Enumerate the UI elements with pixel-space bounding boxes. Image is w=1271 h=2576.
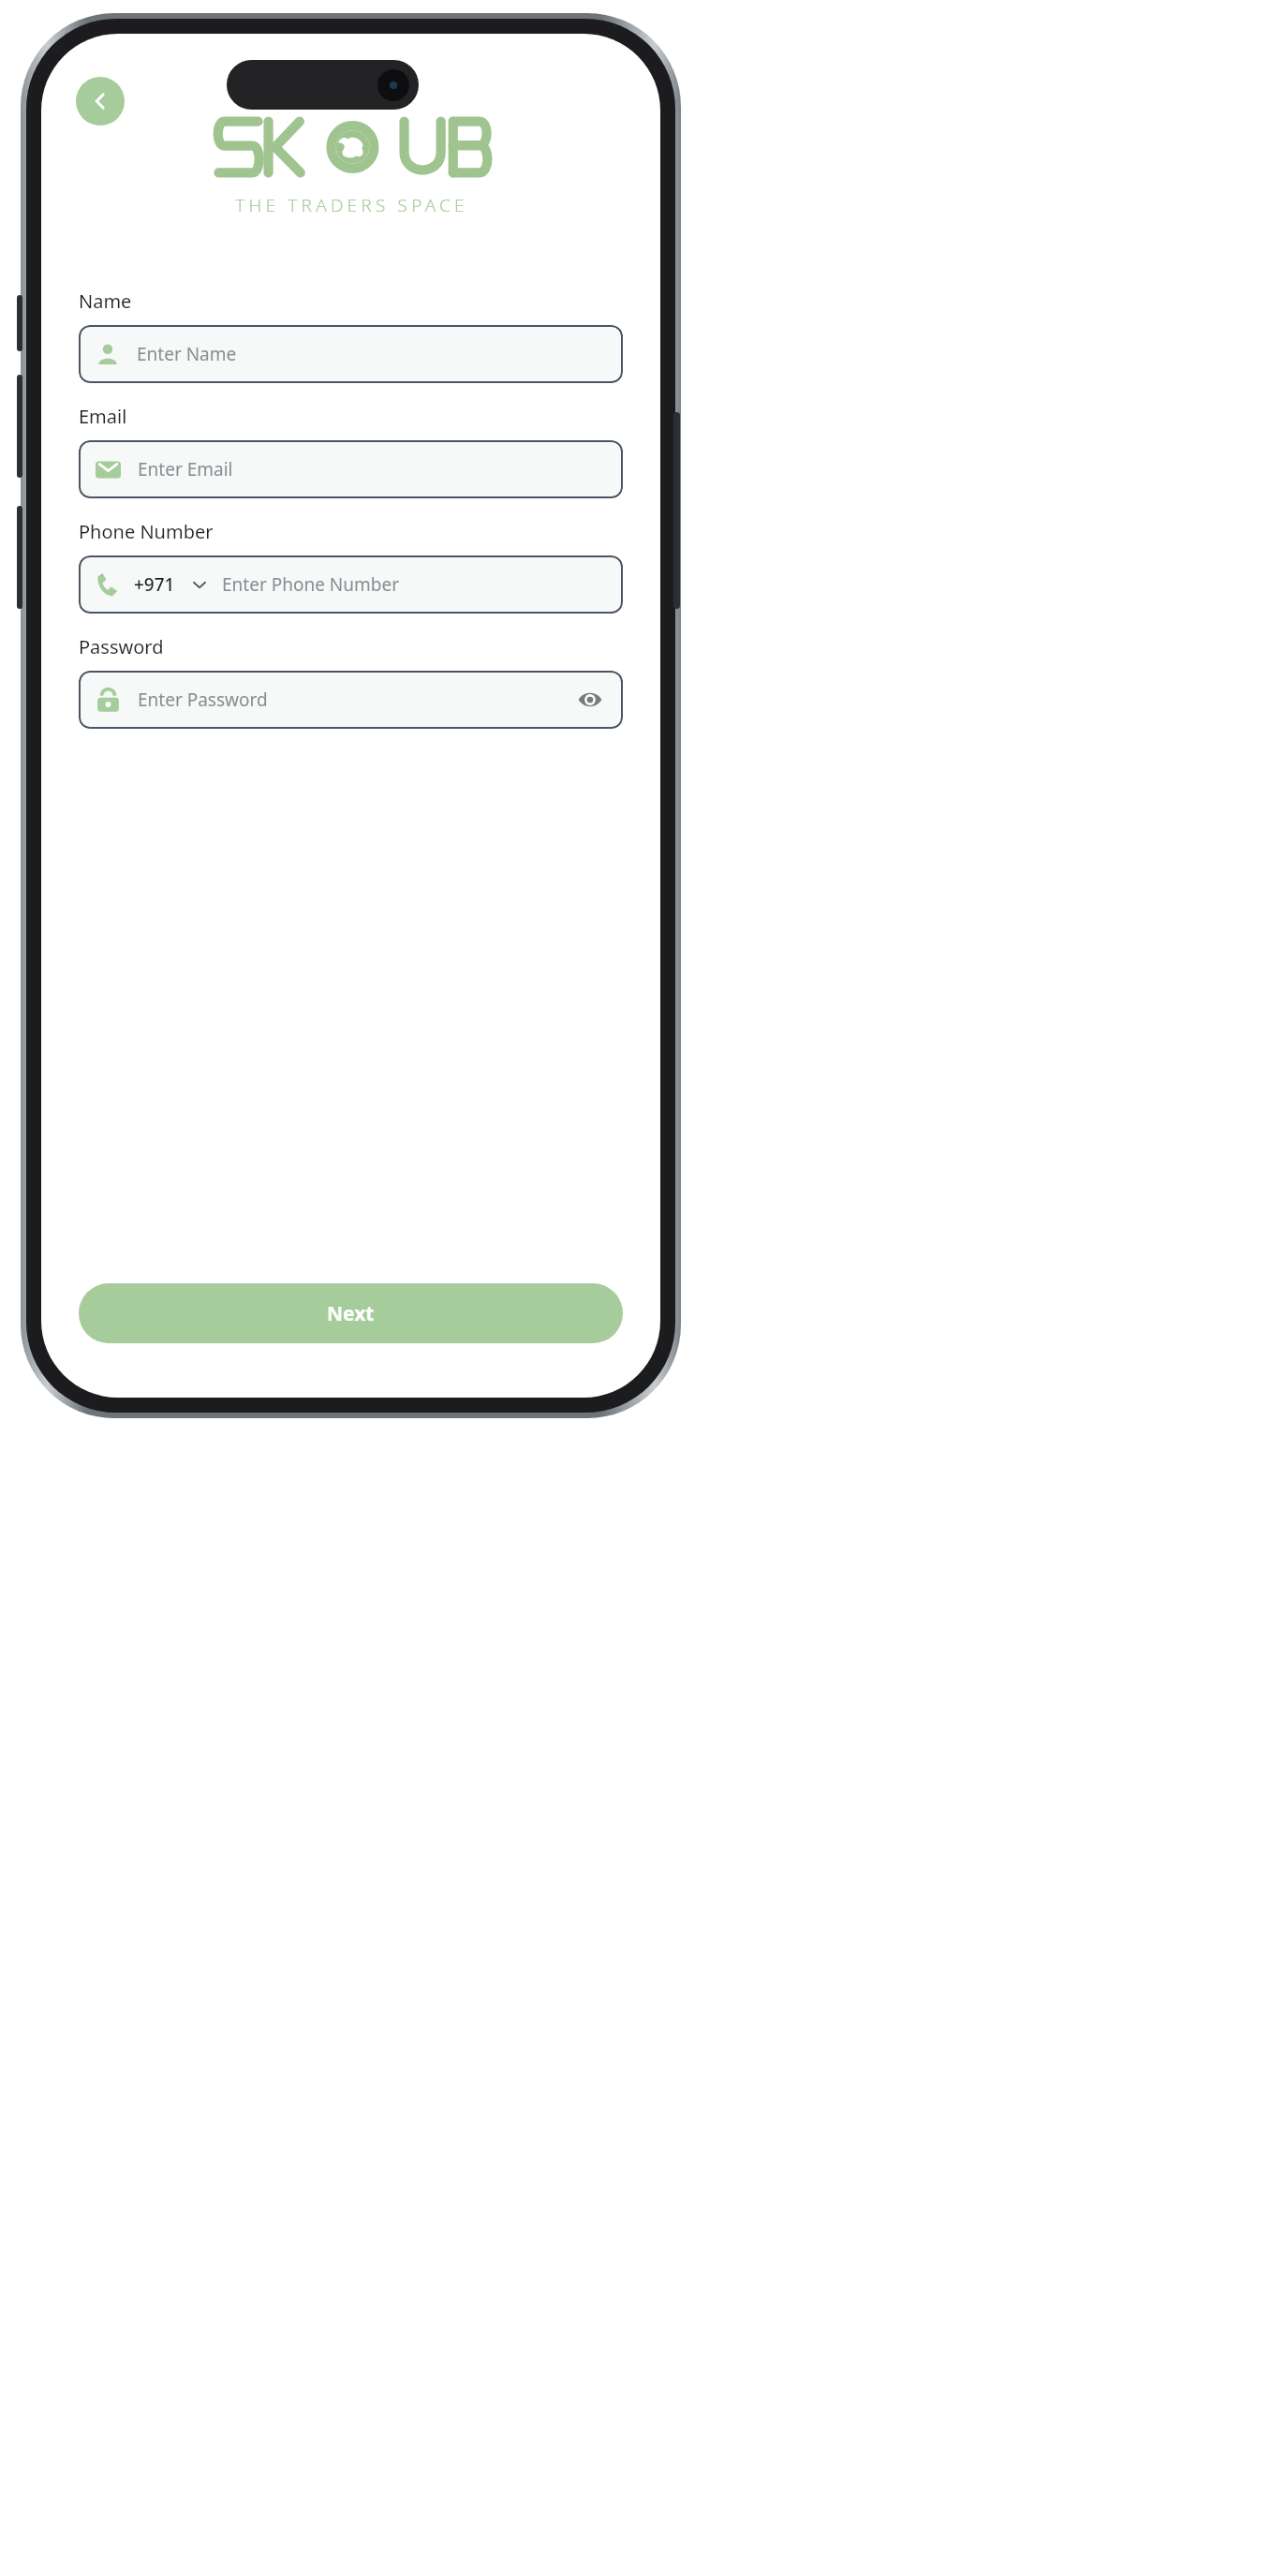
button[interactable]: Show password xyxy=(574,684,606,716)
button[interactable]: Next xyxy=(79,1283,623,1343)
button[interactable]: Back xyxy=(76,77,125,126)
button[interactable]: Enter Email xyxy=(79,440,623,498)
button[interactable]: +971 xyxy=(79,555,623,614)
staticText: Email xyxy=(79,404,127,429)
staticText: Enter Email xyxy=(138,457,233,481)
staticText: Phone Number xyxy=(79,519,214,544)
staticText: THE TRADERS SPACE xyxy=(235,193,468,217)
staticText: Next xyxy=(327,1300,375,1327)
staticText: Password xyxy=(79,634,164,659)
button[interactable]: Enter Name xyxy=(79,325,623,383)
staticText: Name xyxy=(79,289,132,314)
button[interactable]: Enter Password xyxy=(79,671,623,729)
staticText: Enter Password xyxy=(138,688,268,712)
staticText: +971 xyxy=(134,572,175,597)
staticText: Enter Name xyxy=(137,342,237,366)
staticText: Enter Phone Number xyxy=(222,572,399,597)
